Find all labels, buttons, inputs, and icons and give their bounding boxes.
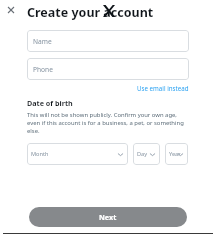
button[interactable]: Use email instead — [137, 84, 189, 92]
staticText: Create your account — [27, 4, 154, 21]
staticText: Date of birth — [27, 98, 73, 108]
button[interactable]: Name — [27, 30, 189, 52]
button[interactable]: Year — [165, 143, 188, 165]
button[interactable]: Day — [133, 143, 160, 165]
staticText: Next — [99, 212, 117, 222]
other: X logo — [101, 3, 116, 18]
staticText: Month — [31, 150, 49, 158]
staticText: Year — [169, 150, 181, 158]
button[interactable]: Close — [4, 3, 17, 16]
staticText: This will not be shown publicly. Confirm… — [27, 111, 189, 135]
staticText: Use email instead — [137, 84, 189, 92]
staticText: Phone — [33, 65, 53, 74]
staticText: Name — [33, 37, 52, 46]
button[interactable]: Phone — [27, 58, 189, 80]
button[interactable]: Month — [27, 143, 128, 165]
button[interactable]: Next — [29, 207, 187, 227]
staticText: Day — [137, 150, 148, 158]
